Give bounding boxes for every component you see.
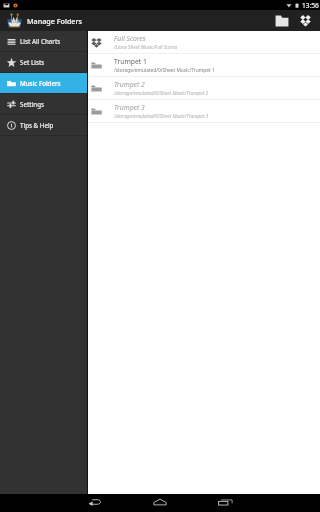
button[interactable]: List All Charts [0, 31, 87, 51]
staticText: /storage/emulated/0/Sheet Music/Trumpet … [114, 67, 215, 74]
staticText: Tips & Help [20, 121, 54, 129]
staticText: Manage Folders [27, 16, 83, 26]
button[interactable]: Recents [210, 494, 240, 512]
button[interactable]: Settings [0, 94, 87, 114]
button[interactable]: Add folder [271, 10, 292, 31]
staticText: Music Folders [20, 79, 61, 87]
button[interactable]: Tips & Help [0, 115, 87, 135]
staticText: Settings [20, 100, 45, 108]
button[interactable]: Navigate up [6, 12, 23, 29]
button[interactable]: Full Scores [88, 31, 320, 54]
staticText: /storage/emulated/0/Sheet Music/Trumpet … [114, 90, 209, 97]
staticText: Trumpet 2 [114, 80, 145, 89]
staticText: Trumpet 3 [114, 103, 145, 112]
staticText: Trumpet 1 [114, 57, 147, 66]
button[interactable]: Trumpet 1 [88, 54, 320, 77]
button[interactable]: Home [145, 494, 175, 512]
button[interactable]: Back [80, 494, 110, 512]
button[interactable]: Dropbox [295, 10, 316, 31]
staticText: /storage/emulated/0/Sheet Music/Trumpet … [114, 113, 209, 120]
staticText: /Lions Sheet Music/Full Scores [114, 44, 178, 51]
button[interactable]: Trumpet 2 [88, 77, 320, 100]
staticText: Full Scores [114, 34, 146, 43]
staticText: Set Lists [20, 58, 45, 66]
button[interactable]: Set Lists [0, 52, 87, 72]
staticText: List All Charts [20, 37, 61, 45]
button[interactable]: Trumpet 3 [88, 100, 320, 123]
staticText: 13:56 [302, 1, 319, 10]
button[interactable]: Music Folders [0, 73, 87, 93]
